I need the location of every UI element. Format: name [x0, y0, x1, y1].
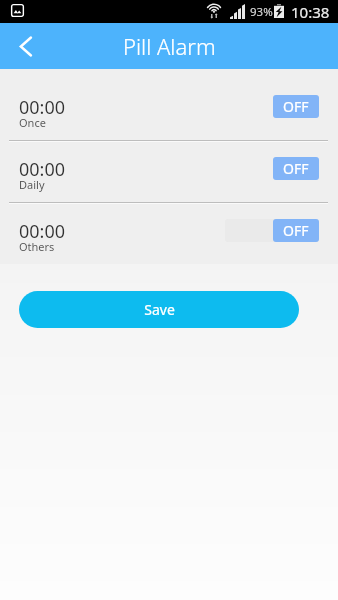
button[interactable]: 00:00 — [0, 78, 338, 140]
staticText: OFF — [283, 97, 309, 116]
button[interactable]: Toggle alarm — [273, 157, 319, 180]
staticText: OFF — [283, 221, 309, 240]
button[interactable]: Back — [6, 27, 44, 65]
staticText: Others — [19, 239, 55, 254]
button[interactable]: Toggle alarm — [225, 219, 319, 242]
button[interactable]: Save — [19, 291, 299, 328]
staticText: 00:00 — [19, 95, 66, 120]
staticText: Once — [19, 115, 46, 130]
staticText: Pill Alarm — [123, 31, 216, 61]
staticText: OFF — [283, 159, 309, 178]
button[interactable]: 00:00 — [0, 140, 338, 202]
staticText: Daily — [19, 177, 45, 192]
staticText: 93% — [250, 4, 273, 20]
staticText: 10:38 — [291, 2, 330, 22]
button[interactable]: 00:00 — [0, 202, 338, 264]
staticText: 00:00 — [19, 219, 66, 244]
staticText: Save — [144, 300, 175, 319]
button[interactable]: Toggle alarm — [273, 95, 319, 118]
staticText: 00:00 — [19, 157, 66, 182]
